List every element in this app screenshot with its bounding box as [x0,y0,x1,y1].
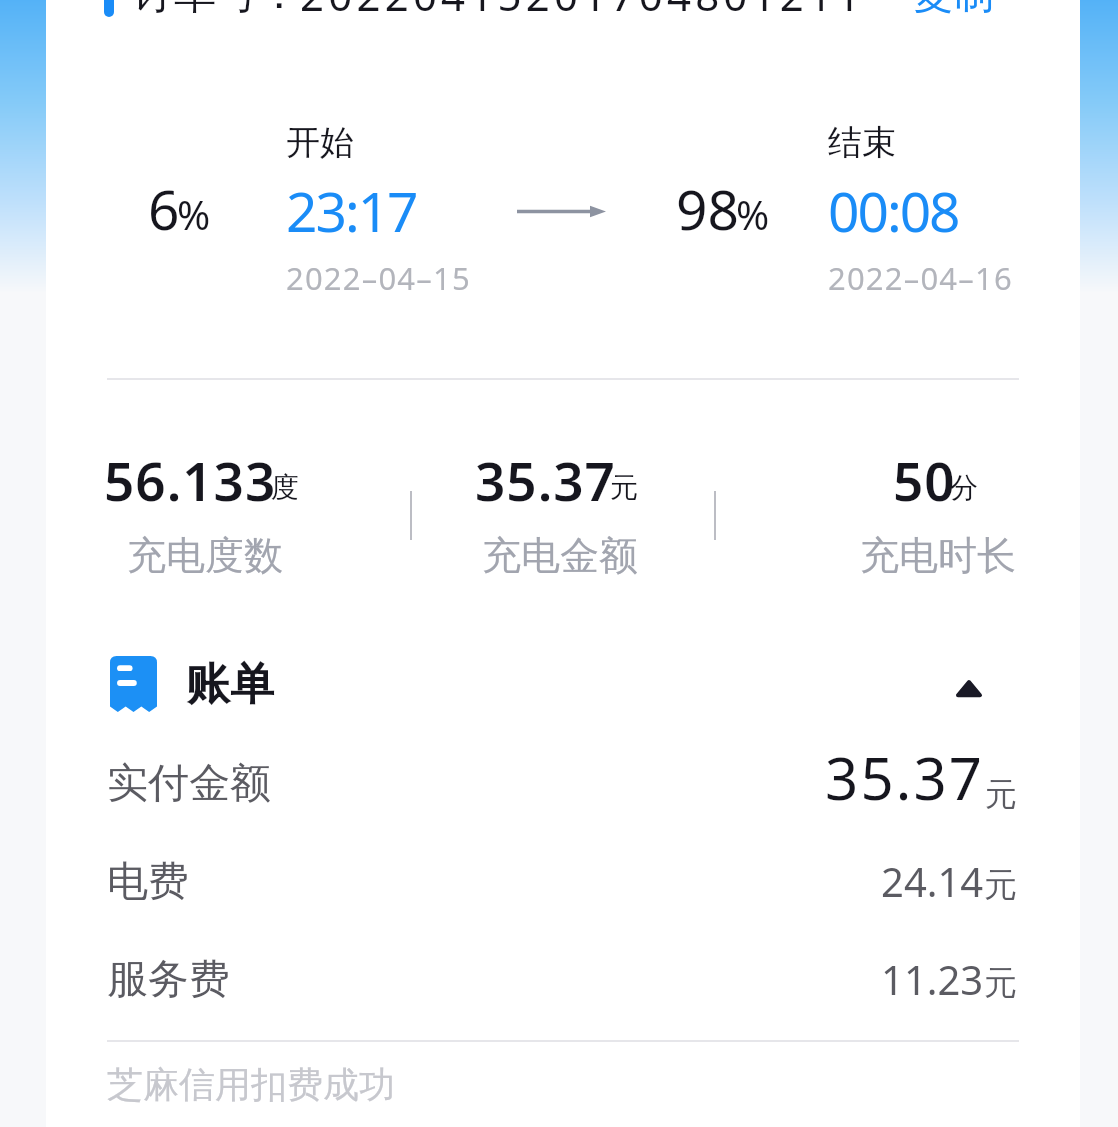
staticText: 6 [148,171,180,246]
button[interactable]: 服务费 [46,931,1080,1029]
staticText: 50 [893,444,956,516]
button[interactable]: 复制 [912,0,994,21]
staticText: 35.37 [475,444,616,516]
staticText: 充电金额 [482,531,638,580]
staticText: 芝麻信用扣费成功 [107,1062,395,1107]
button[interactable]: 订单号： [132,0,865,23]
staticText: 电费 [107,856,189,908]
button[interactable]: 账单 [46,650,1080,718]
staticText: 56.133 [104,444,277,516]
staticText: 复制 [912,0,994,21]
staticText: 元 [984,962,1017,1004]
staticText: 98 [676,171,739,246]
button[interactable]: 实付金额 [46,735,1080,833]
staticText: 元 [984,864,1017,906]
staticText: 元 [610,470,638,505]
staticText: 35.37 [825,738,985,817]
staticText: % [177,187,211,241]
staticText: 分 [950,470,978,505]
staticText: % [736,187,770,241]
staticText: 充电度数 [127,531,283,580]
staticText: 账单 [186,657,274,712]
staticText: 2022–04–16 [828,257,1013,299]
staticText: 结束 [828,121,896,164]
staticText: 元 [985,774,1017,814]
staticText: 充电时长 [860,531,1016,580]
staticText: 11.23 [881,952,984,1006]
staticText: 24.14 [881,854,984,908]
staticText: 20220415201704801211 [300,0,865,23]
button[interactable]: 电费 [46,833,1080,931]
staticText: 实付金额 [107,758,271,810]
staticText: 00:08 [828,173,959,248]
staticText: 23:17 [286,173,417,248]
staticText: 服务费 [107,954,230,1006]
staticText: 2022–04–15 [286,257,471,299]
other: Collapse bill [958,676,980,705]
staticText: 订单号： [132,0,300,21]
staticText: 开始 [286,121,354,164]
staticText: 度 [271,470,299,505]
